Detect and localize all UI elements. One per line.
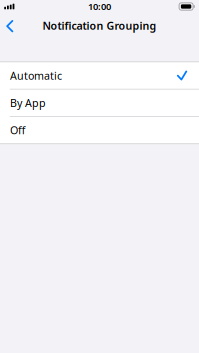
staticText: Automatic (10, 68, 62, 83)
staticText: By App (10, 96, 46, 110)
button[interactable]: Back (0, 13, 22, 37)
staticText: Off (10, 123, 25, 137)
staticText: 10:00 (88, 0, 111, 13)
button[interactable]: By App (0, 89, 199, 117)
button[interactable]: Automatic (0, 62, 199, 89)
button[interactable]: Off (0, 117, 199, 143)
staticText: Notification Grouping (42, 18, 156, 33)
